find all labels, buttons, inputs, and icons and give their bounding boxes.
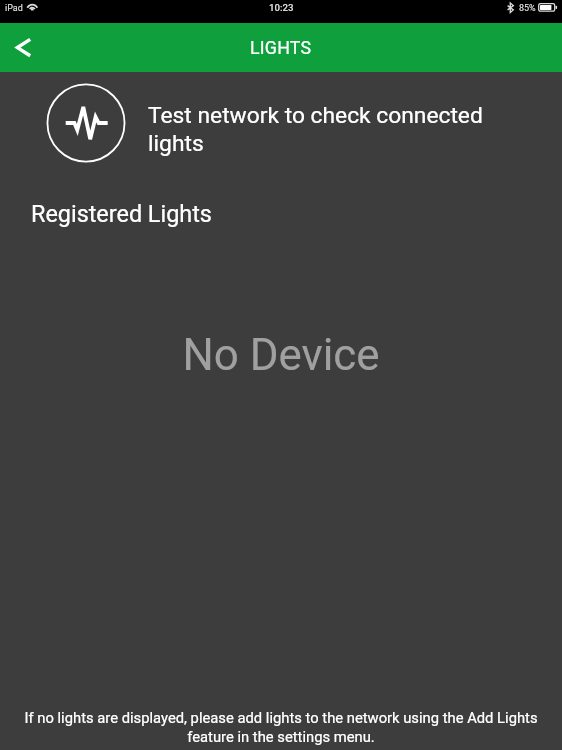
- other: Battery 85 percent: [538, 3, 559, 13]
- staticText: Registered Lights: [31, 200, 212, 227]
- other: Wi-Fi: [26, 1, 39, 13]
- staticText: iPad: [5, 3, 23, 14]
- staticText: If no lights are displayed, please add l…: [10, 709, 552, 745]
- staticText: LIGHTS: [250, 37, 312, 58]
- other: Bluetooth: [507, 2, 515, 13]
- staticText: Test network to check connected lights: [148, 102, 498, 157]
- button[interactable]: Back: [0, 25, 46, 71]
- staticText: No Device: [0, 329, 562, 380]
- staticText: 85%: [519, 3, 536, 14]
- button[interactable]: Test network to check connected lights: [0, 79, 562, 167]
- staticText: 10:23: [269, 2, 294, 13]
